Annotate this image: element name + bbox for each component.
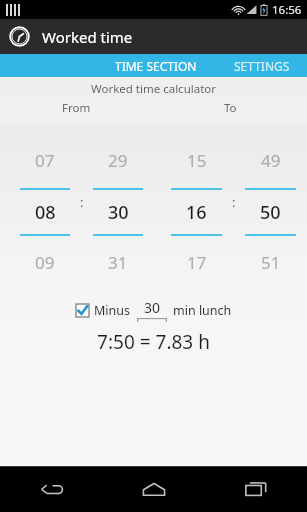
staticText: : bbox=[232, 193, 236, 211]
staticText: 49 bbox=[261, 149, 281, 172]
button[interactable]: Minus lunch checkbox bbox=[76, 302, 131, 319]
staticText: 16:56 bbox=[272, 2, 302, 18]
staticText: 16 bbox=[186, 200, 207, 225]
button[interactable]: 29 bbox=[93, 131, 143, 274]
button[interactable]: TIME SECTION bbox=[96, 54, 216, 77]
button[interactable]: SETTINGS bbox=[216, 54, 307, 77]
button[interactable]: Back bbox=[0, 466, 103, 512]
staticText: 7:50 = 7.83 h bbox=[0, 329, 307, 355]
staticText: 07 bbox=[35, 149, 55, 172]
other: Minus lunch checkbox bbox=[76, 304, 89, 317]
staticText: 50 bbox=[260, 200, 281, 225]
staticText: 30 bbox=[144, 298, 161, 317]
staticText: 31 bbox=[108, 251, 128, 274]
staticText: 29 bbox=[108, 149, 128, 172]
staticText: To bbox=[224, 100, 237, 116]
staticText: 30 bbox=[108, 200, 129, 225]
button[interactable]: 30 bbox=[137, 298, 167, 322]
staticText: 15 bbox=[187, 149, 207, 172]
staticText: Worked time calculator bbox=[0, 81, 307, 97]
button[interactable]: Home bbox=[103, 466, 205, 512]
staticText: Minus bbox=[94, 302, 131, 319]
staticText: 51 bbox=[261, 251, 281, 274]
staticText: : bbox=[80, 193, 84, 211]
button[interactable]: Recent apps bbox=[205, 466, 307, 512]
button[interactable]: 49 bbox=[245, 131, 296, 274]
staticText: SETTINGS bbox=[234, 58, 290, 74]
staticText: 17 bbox=[187, 251, 207, 274]
staticText: min lunch bbox=[173, 302, 232, 319]
button[interactable]: 07 bbox=[20, 131, 70, 274]
staticText: TIME SECTION bbox=[115, 58, 197, 74]
staticText: 08 bbox=[35, 200, 56, 225]
staticText: 09 bbox=[35, 251, 55, 274]
staticText: From bbox=[62, 100, 91, 116]
button[interactable]: 15 bbox=[171, 131, 222, 274]
staticText: Worked time bbox=[42, 27, 133, 47]
